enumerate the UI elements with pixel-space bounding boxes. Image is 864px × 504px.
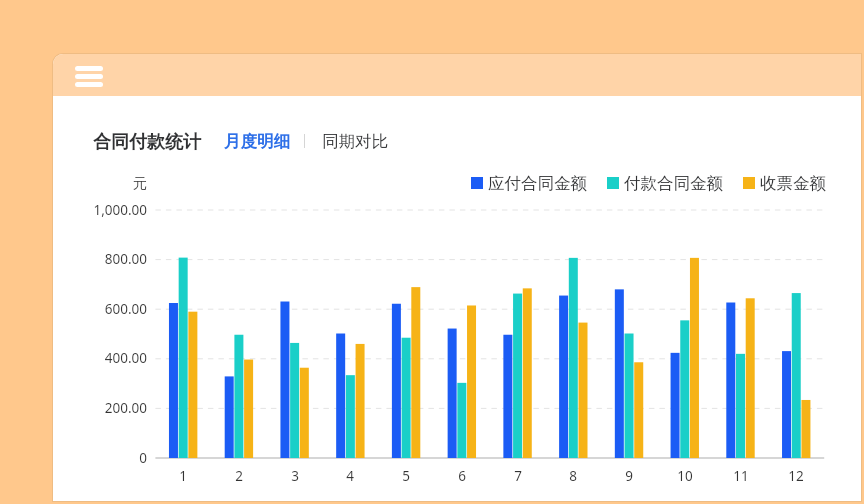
staticText: 1 — [163, 467, 203, 485]
staticText: 12 — [776, 467, 816, 485]
staticText: 3 — [275, 467, 315, 485]
staticText: 400.00 — [57, 349, 147, 367]
button[interactable]: 付款合同金额 — [607, 168, 723, 198]
staticText: 1,000.00 — [57, 201, 147, 219]
staticText: 收票金额 — [760, 173, 826, 194]
button[interactable]: 收票金额 — [743, 168, 826, 198]
staticText: 5 — [386, 467, 426, 485]
staticText: 应付合同金额 — [488, 173, 587, 194]
staticText: 2 — [219, 467, 259, 485]
staticText: 0 — [57, 449, 147, 467]
staticText: 4 — [330, 467, 370, 485]
staticText: 7 — [498, 467, 538, 485]
staticText: 月度明细 — [224, 131, 290, 152]
staticText: 付款合同金额 — [624, 173, 723, 194]
staticText: 6 — [442, 467, 482, 485]
staticText: 200.00 — [57, 399, 147, 417]
staticText: 元 — [133, 175, 147, 193]
staticText: 8 — [553, 467, 593, 485]
staticText: 9 — [609, 467, 649, 485]
button[interactable]: 同期对比 — [315, 126, 395, 156]
button[interactable]: 月度明细 — [217, 126, 297, 156]
button[interactable]: 应付合同金额 — [471, 168, 587, 198]
staticText: 600.00 — [57, 300, 147, 318]
staticText: 同期对比 — [322, 131, 388, 152]
staticText: 800.00 — [57, 250, 147, 268]
button[interactable]: Menu — [65, 57, 113, 95]
staticText: 10 — [665, 467, 705, 485]
staticText: 11 — [721, 467, 761, 485]
staticText: 合同付款统计 — [93, 131, 201, 154]
